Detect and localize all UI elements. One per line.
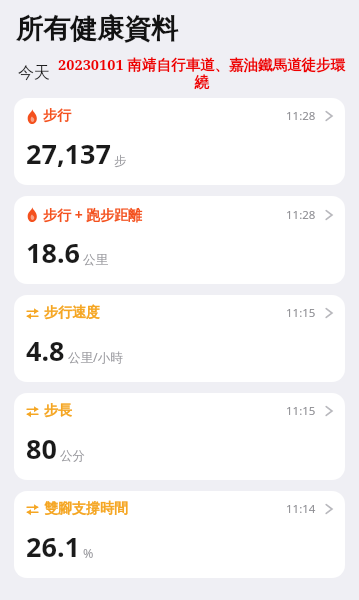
staticText: 80: [26, 430, 57, 467]
staticText: 27,137: [26, 135, 111, 172]
staticText: 雙腳支撐時間: [44, 500, 128, 518]
other: 顯示詳細資料: [325, 404, 333, 418]
other: 顯示詳細資料: [325, 502, 333, 516]
staticText: 20230101 南靖自行車道、嘉油鐵馬道徒步環繞: [56, 54, 347, 91]
staticText: 4.8: [26, 332, 65, 369]
other: 顯示詳細資料: [325, 306, 333, 320]
staticText: 11:28: [286, 108, 316, 124]
staticText: 公里/小時: [68, 349, 123, 366]
staticText: 11:14: [286, 501, 316, 517]
staticText: 步長: [44, 402, 72, 420]
staticText: 11:28: [286, 207, 316, 223]
button[interactable]: 步行: [14, 98, 345, 185]
other: 顯示詳細資料: [325, 208, 333, 222]
staticText: 步行 + 跑步距離: [43, 205, 143, 224]
staticText: 步: [114, 153, 127, 169]
staticText: 18.6: [26, 234, 80, 271]
staticText: 步行速度: [44, 304, 100, 322]
staticText: 所有健康資料: [16, 12, 178, 46]
staticText: 今天: [18, 63, 50, 83]
staticText: 公分: [60, 448, 85, 464]
button[interactable]: 步長: [14, 393, 345, 480]
staticText: 公里: [83, 252, 108, 268]
button[interactable]: 步行速度: [14, 295, 345, 382]
button[interactable]: 雙腳支撐時間: [14, 491, 345, 578]
staticText: 26.1: [26, 528, 80, 565]
staticText: 11:15: [286, 305, 316, 321]
staticText: 11:15: [286, 403, 316, 419]
staticText: 步行: [43, 107, 71, 125]
button[interactable]: 步行 + 跑步距離: [14, 196, 345, 284]
other: 顯示詳細資料: [325, 109, 333, 123]
staticText: %: [83, 545, 94, 562]
